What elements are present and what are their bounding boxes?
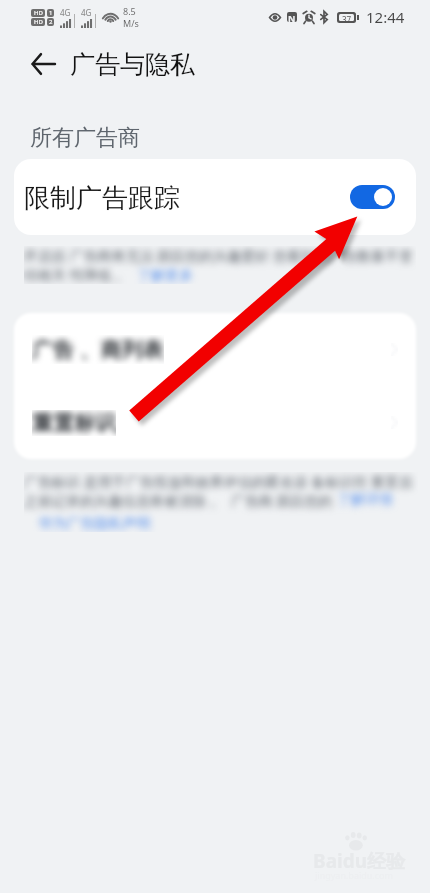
staticText: 了解更多 <box>130 265 194 284</box>
staticText: Baidu经验 <box>313 848 406 874</box>
staticText: 但相关 性降低 。 <box>24 265 130 284</box>
staticText: 重置标识 <box>32 410 116 436</box>
button[interactable]: Back <box>21 42 65 86</box>
staticText: 1 <box>49 9 53 17</box>
staticText: 4G <box>60 7 71 18</box>
staticText: 37 <box>342 14 352 21</box>
staticText: HD <box>34 9 43 17</box>
button[interactable]: 重置标识 <box>14 386 416 459</box>
staticText: 华为广告隐私声明 <box>24 513 151 532</box>
staticText: 限制广告跟踪 <box>24 182 180 215</box>
staticText: 广告标识 是用于广告投放和效果评估的匿名设 备标识符 重置后 <box>24 472 413 491</box>
staticText: 了解详情 <box>337 491 393 509</box>
button[interactable]: 限制广告跟踪 <box>14 159 416 235</box>
staticText: 开启后 广告商将无法 跟踪您的兴趣爱好 您看到的广告数量不变 <box>24 246 413 265</box>
staticText: HD <box>34 18 43 26</box>
staticText: 之前记录的兴趣信息将被清除 。 广告商 跟踪您的 <box>24 491 337 510</box>
staticText: 8.5 <box>123 5 136 17</box>
staticText: 4G <box>81 7 92 18</box>
staticText: 广告与隐私 <box>70 49 195 80</box>
staticText: M/s <box>123 17 139 29</box>
button[interactable]: 广告 、商列表 <box>14 313 416 386</box>
staticText: 所有广告商 <box>30 124 140 152</box>
staticText: 广告 、商列表 <box>32 335 164 364</box>
staticText: N <box>288 12 296 22</box>
staticText: 2 <box>49 18 53 26</box>
staticText: 12:44 <box>366 7 405 27</box>
button[interactable]: Limit ad tracking <box>350 185 395 209</box>
